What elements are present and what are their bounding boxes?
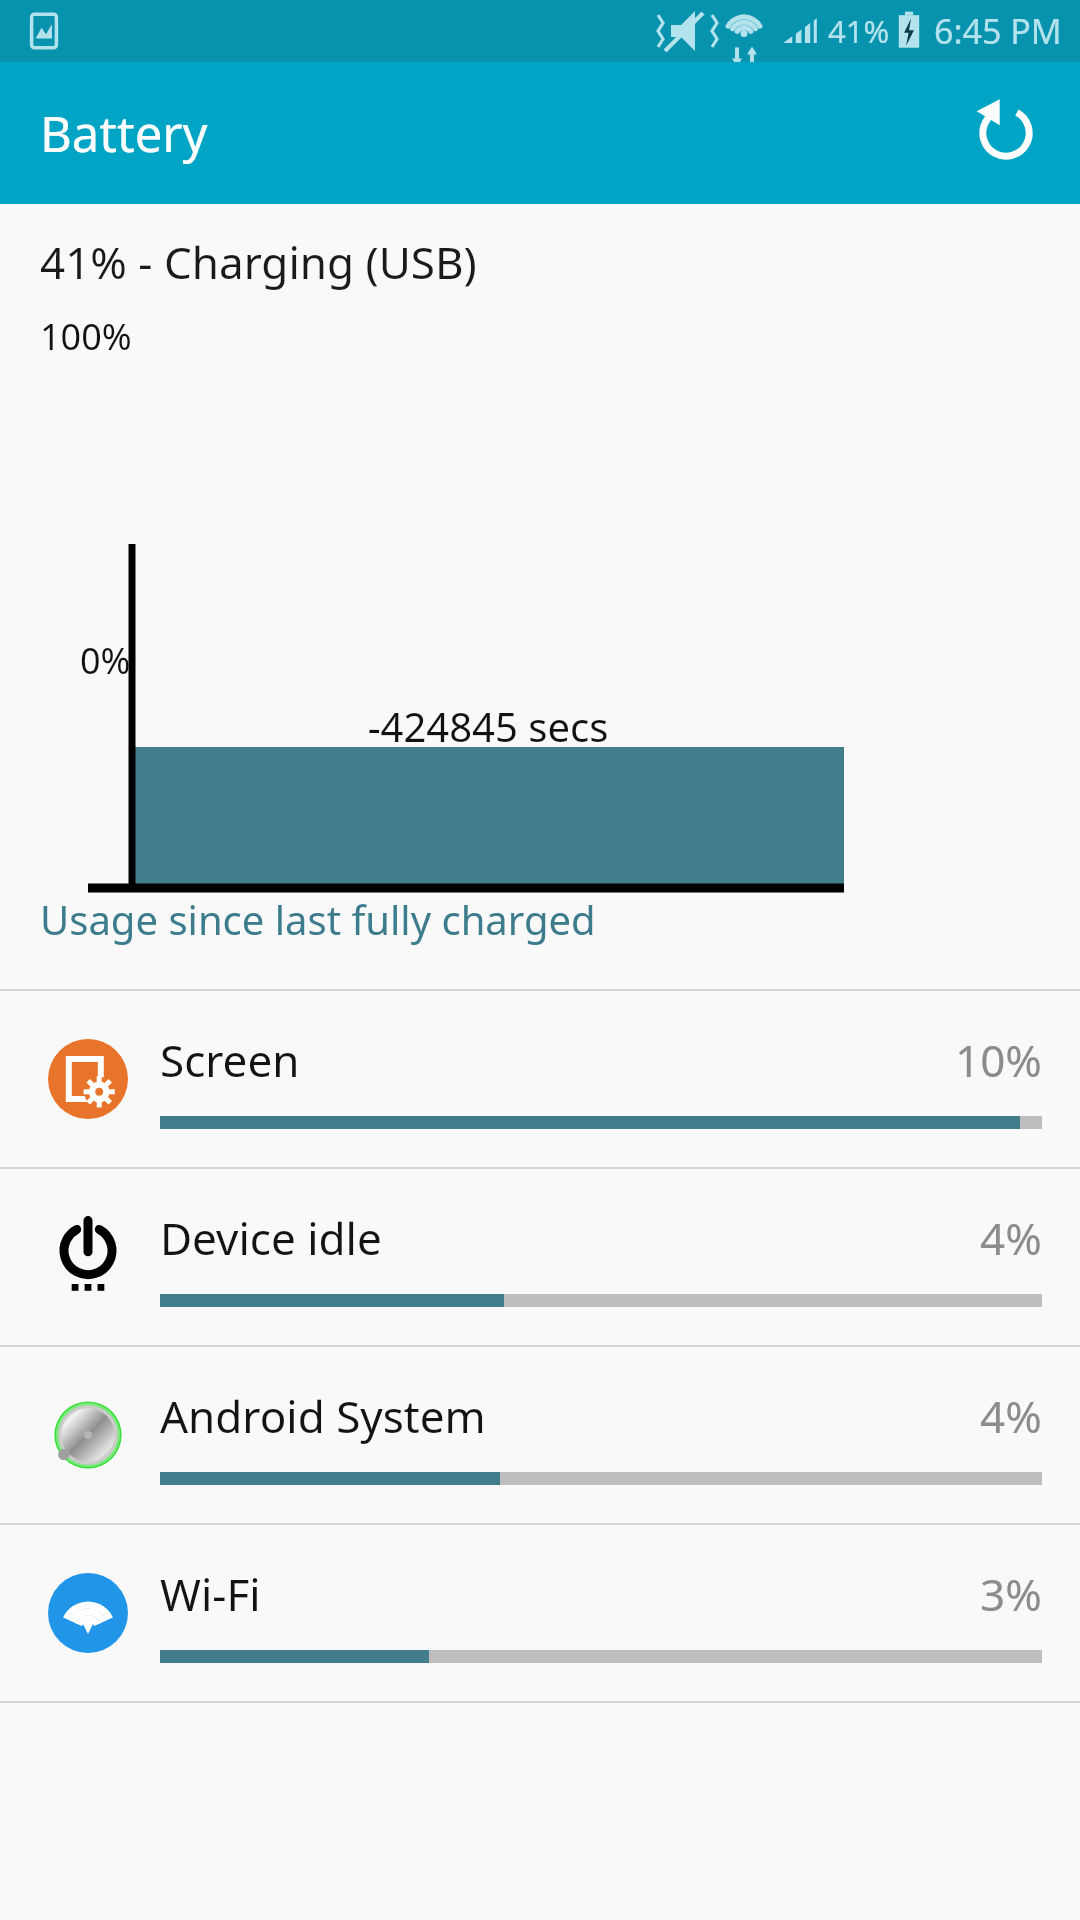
- staticText: 41% - Charging (USB): [40, 232, 477, 292]
- button[interactable]: Screen: [0, 991, 1080, 1167]
- staticText: Battery: [40, 100, 208, 167]
- staticText: 41%: [828, 10, 890, 52]
- button[interactable]: Wi-Fi: [0, 1525, 1080, 1701]
- button[interactable]: Device idle: [0, 1169, 1080, 1345]
- staticText: Wi-Fi: [160, 1564, 261, 1624]
- staticText: 3%: [980, 1564, 1042, 1624]
- staticText: Screen: [160, 1030, 300, 1090]
- button[interactable]: Refresh: [958, 85, 1054, 181]
- staticText: 10%: [955, 1030, 1042, 1090]
- staticText: 6:45 PM: [934, 8, 1062, 54]
- staticText: Usage since last fully charged: [40, 892, 596, 946]
- staticText: 4%: [980, 1208, 1042, 1268]
- staticText: 4%: [980, 1386, 1042, 1446]
- staticText: -424845 secs: [132, 699, 844, 753]
- staticText: 0%: [80, 636, 131, 685]
- staticText: 100%: [40, 312, 132, 361]
- staticText: Device idle: [160, 1208, 382, 1268]
- button[interactable]: Android System: [0, 1347, 1080, 1523]
- staticText: Android System: [160, 1386, 486, 1446]
